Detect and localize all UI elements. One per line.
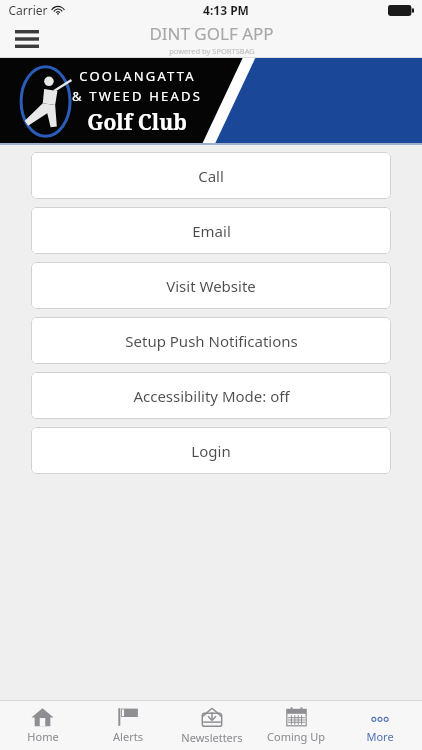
- staticText: Golf Club: [87, 108, 187, 137]
- button[interactable]: Email: [31, 207, 391, 254]
- staticText: 4:13 PM: [203, 2, 249, 18]
- button[interactable]: Login: [31, 427, 391, 474]
- button[interactable]: More: [338, 701, 422, 750]
- staticText: Call: [198, 166, 224, 186]
- staticText: Carrier: [8, 2, 48, 18]
- staticText: More: [366, 729, 394, 744]
- staticText: Newsletters: [181, 730, 243, 745]
- staticText: Setup Push Notifications: [125, 331, 298, 351]
- staticText: Email: [192, 221, 231, 241]
- button[interactable]: Accessibility Mode: off: [31, 372, 391, 419]
- staticText: Accessibility Mode: off: [133, 386, 290, 406]
- button[interactable]: Home: [0, 701, 85, 750]
- staticText: Home: [27, 729, 59, 744]
- staticText: Login: [191, 441, 231, 461]
- button[interactable]: Coming Up: [254, 701, 338, 750]
- staticText: Visit Website: [166, 276, 256, 296]
- button[interactable]: Setup Push Notifications: [31, 317, 391, 364]
- staticText: & TWEED HEADS: [72, 87, 202, 105]
- button[interactable]: Menu: [6, 22, 48, 56]
- staticText: Alerts: [113, 729, 143, 744]
- button[interactable]: Newsletters: [170, 701, 254, 750]
- staticText: powered by SPORTSBAG: [169, 46, 255, 56]
- button[interactable]: Alerts: [85, 701, 170, 750]
- staticText: Coming Up: [267, 729, 325, 744]
- button[interactable]: Call: [31, 152, 391, 199]
- button[interactable]: Visit Website: [31, 262, 391, 309]
- staticText: DINT GOLF APP: [149, 22, 274, 45]
- staticText: COOLANGATTA: [79, 67, 196, 85]
